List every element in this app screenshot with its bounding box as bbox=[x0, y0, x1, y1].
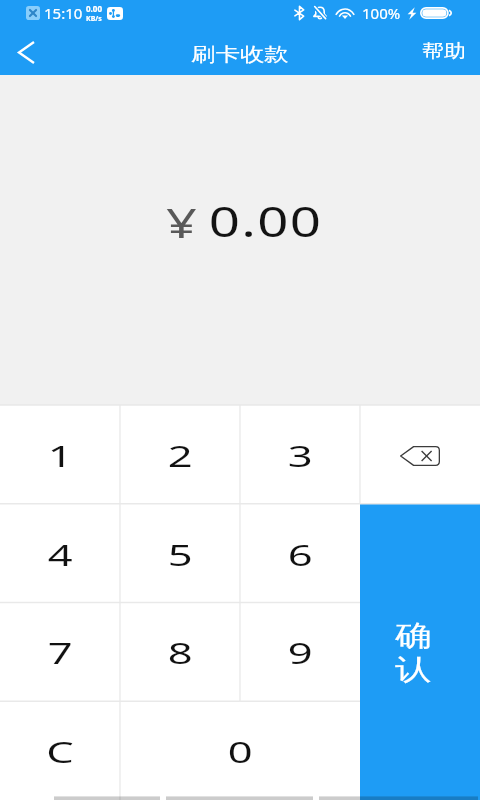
button[interactable]: Backspace bbox=[360, 405, 480, 504]
button[interactable]: 1 bbox=[0, 405, 120, 504]
button[interactable]: 0 bbox=[120, 701, 360, 800]
button[interactable]: Back bbox=[0, 26, 52, 75]
staticText: 6 bbox=[288, 535, 313, 574]
button[interactable]: C bbox=[0, 701, 120, 800]
button[interactable]: 9 bbox=[240, 602, 360, 701]
staticText: 9 bbox=[288, 633, 313, 672]
button[interactable]: 4 bbox=[0, 504, 120, 602]
button[interactable]: 6 bbox=[240, 504, 360, 602]
button[interactable]: 5 bbox=[120, 504, 240, 602]
staticText: 4 bbox=[48, 535, 73, 574]
staticText: 100% bbox=[362, 3, 401, 23]
button[interactable]: 确 认 bbox=[360, 504, 480, 800]
button[interactable]: 7 bbox=[0, 602, 120, 701]
staticText: 0.00 bbox=[209, 192, 323, 249]
staticText: 0 bbox=[228, 732, 253, 771]
staticText: KB/s bbox=[86, 14, 102, 24]
staticText: 3 bbox=[288, 436, 313, 475]
button[interactable]: 8 bbox=[120, 602, 240, 701]
staticText: 7 bbox=[48, 633, 73, 672]
staticText: 5 bbox=[168, 535, 193, 574]
staticText: 1 bbox=[48, 436, 73, 475]
staticText: ¥ bbox=[166, 195, 197, 249]
staticText: 2 bbox=[168, 436, 193, 475]
staticText: 15:10 bbox=[44, 3, 83, 23]
staticText: 刷卡收款 bbox=[191, 43, 289, 67]
staticText: C bbox=[46, 732, 75, 771]
button[interactable]: 3 bbox=[240, 405, 360, 504]
staticText: 帮助 bbox=[422, 40, 466, 63]
button[interactable]: 帮助 bbox=[412, 26, 480, 75]
button[interactable]: 2 bbox=[120, 405, 240, 504]
staticText: 0.00 bbox=[86, 3, 102, 14]
staticText: 8 bbox=[168, 633, 193, 672]
staticText: 确 认 bbox=[395, 618, 432, 688]
